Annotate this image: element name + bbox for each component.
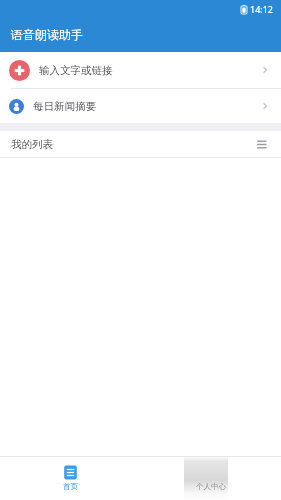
button[interactable]: 个人中心 (140, 456, 281, 500)
button[interactable]: 每日新闻摘要 (0, 89, 281, 123)
button[interactable]: 我的列表 (0, 131, 281, 157)
staticText: 个人中心 (196, 482, 226, 491)
button[interactable]: 首页 (0, 456, 140, 500)
staticText: 语音朗读助手 (11, 27, 83, 42)
other: List options (252, 135, 270, 153)
staticText: 首页 (63, 482, 78, 491)
button[interactable]: 输入文字或链接 (0, 52, 281, 88)
staticText: 输入文字或链接 (39, 64, 113, 77)
staticText: 我的列表 (11, 138, 53, 151)
other: Open (259, 64, 271, 76)
staticText: 14:12 (250, 3, 274, 15)
staticText: 每日新闻摘要 (33, 100, 96, 113)
other: Open (259, 100, 271, 112)
